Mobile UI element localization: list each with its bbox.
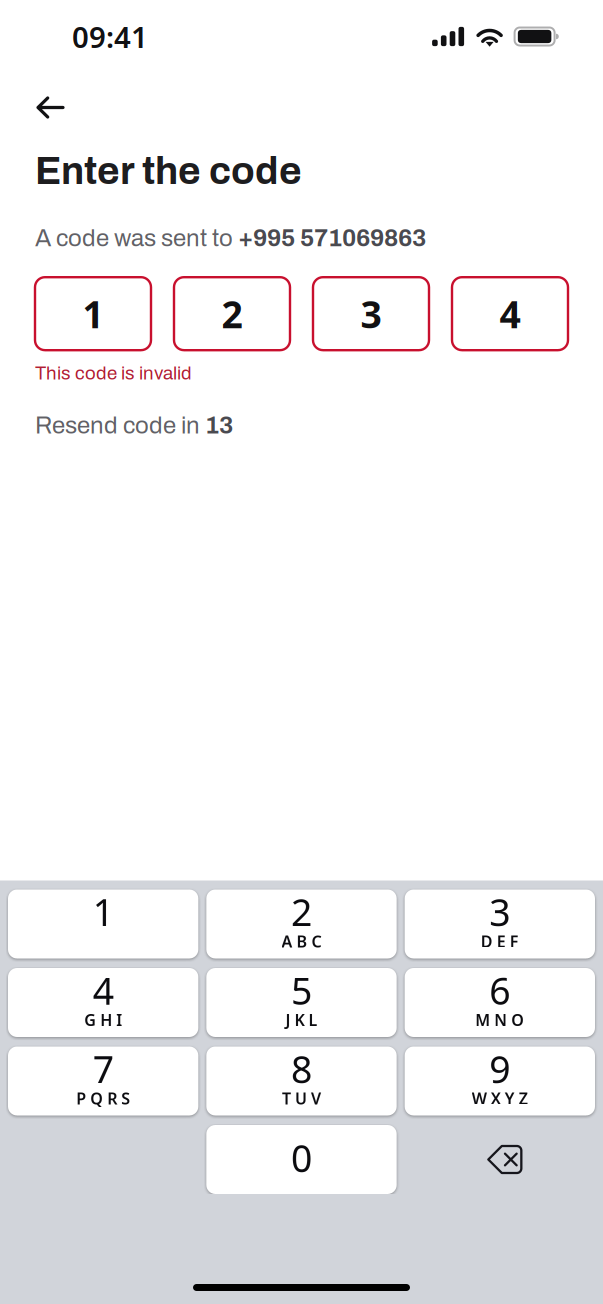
staticText: 7 <box>93 1044 114 1094</box>
staticText: +995 571069863 <box>238 225 426 251</box>
staticText: 6 <box>489 965 510 1015</box>
staticText: 4 <box>499 289 520 338</box>
button[interactable]: 2 <box>206 889 397 958</box>
staticText: 4 <box>93 965 114 1015</box>
button[interactable]: 6 <box>405 968 595 1037</box>
button[interactable]: 7 <box>8 1046 198 1115</box>
staticText: 2 <box>221 289 242 338</box>
button[interactable]: 3 <box>405 889 595 958</box>
staticText: GHI <box>84 1009 122 1030</box>
staticText: 13 <box>205 412 233 439</box>
button[interactable]: 5 <box>206 968 397 1037</box>
staticText: TUV <box>282 1088 321 1109</box>
staticText: 8 <box>291 1044 312 1094</box>
button[interactable]: Back <box>26 86 75 129</box>
button[interactable]: 9 <box>405 1046 595 1115</box>
staticText: 3 <box>489 887 510 937</box>
staticText: MNO <box>475 1009 524 1030</box>
staticText: Enter the code <box>35 150 302 192</box>
staticText: PQRS <box>76 1088 130 1109</box>
button[interactable]: 1 <box>8 889 198 958</box>
staticText: 5 <box>291 965 312 1015</box>
staticText: A code was sent to <box>35 225 238 251</box>
staticText: 1 <box>82 289 103 338</box>
staticText: 9 <box>489 1044 510 1094</box>
button[interactable]: 8 <box>206 1046 397 1115</box>
staticText: 09:41 <box>72 17 148 56</box>
staticText: JKL <box>285 1009 317 1030</box>
staticText: DEF <box>481 931 519 952</box>
staticText: 1 <box>93 887 114 937</box>
button[interactable]: 4 <box>8 968 198 1037</box>
button[interactable]: Delete <box>405 1125 595 1194</box>
staticText: 2 <box>291 887 312 937</box>
staticText: Resend code in <box>35 412 205 439</box>
staticText: 3 <box>360 289 381 338</box>
staticText: ABC <box>281 931 321 952</box>
staticText: 0 <box>291 1133 312 1183</box>
staticText: This code is invalid <box>35 363 192 383</box>
staticText: WXYZ <box>472 1088 528 1109</box>
button[interactable]: 0 <box>206 1125 397 1194</box>
